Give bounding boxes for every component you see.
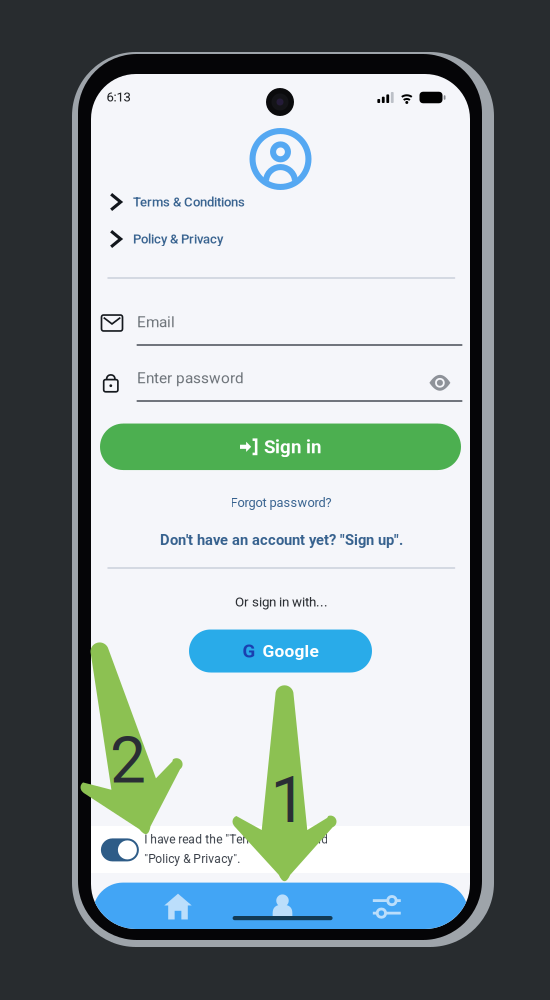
- button[interactable]: Sign in: [100, 424, 461, 470]
- staticText: Terms & Conditions: [133, 194, 245, 210]
- staticText: Don't have an account yet? "Sign up".: [160, 531, 403, 549]
- button[interactable]: Show password: [423, 368, 457, 398]
- button[interactable]: Accept terms: [101, 838, 139, 861]
- staticText: I have read the "Terms of Use" and: [144, 832, 328, 847]
- staticText: 1: [271, 763, 307, 838]
- button[interactable]: Terms & Conditions: [91, 185, 470, 219]
- staticText: Email: [137, 313, 175, 331]
- button[interactable]: Home: [138, 879, 218, 933]
- button[interactable]: Policy & Privacy: [91, 222, 470, 256]
- button[interactable]: Forgot password?: [196, 492, 366, 514]
- staticText: G: [242, 640, 255, 662]
- button[interactable]: Don't have an account yet? "Sign up".: [131, 528, 431, 552]
- button[interactable]: Settings: [347, 879, 427, 933]
- staticText: Enter password: [137, 369, 244, 387]
- staticText: 6:13: [106, 89, 130, 105]
- button[interactable]: Profile: [242, 879, 322, 933]
- staticText: Forgot password?: [230, 495, 331, 510]
- staticText: Or sign in with...: [235, 594, 328, 610]
- staticText: Google: [262, 641, 318, 661]
- staticText: 2: [110, 723, 146, 798]
- staticText: Sign in: [264, 436, 321, 458]
- staticText: Policy & Privacy: [133, 231, 223, 247]
- button[interactable]: G: [189, 629, 372, 672]
- staticText: "Policy & Privacy".: [144, 852, 240, 866]
